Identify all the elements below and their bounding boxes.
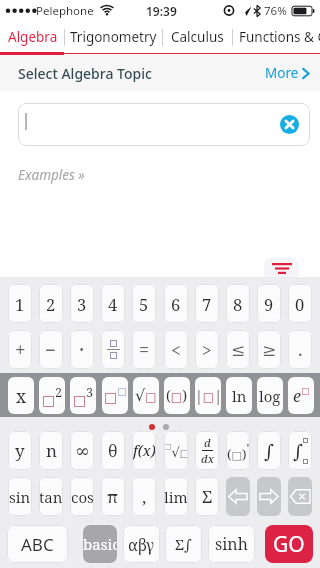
staticText: tan	[39, 487, 63, 507]
button[interactable]: lim	[164, 477, 188, 516]
staticText: dx	[201, 451, 214, 466]
staticText: 7	[202, 293, 212, 315]
button[interactable]: (□)'	[226, 431, 250, 470]
staticText: □3	[73, 384, 93, 408]
staticText: >	[202, 338, 212, 362]
button[interactable]: Functions & G	[232, 22, 320, 52]
button[interactable]: θ	[101, 431, 125, 470]
staticText: GO	[273, 530, 305, 559]
button[interactable]	[280, 115, 299, 134]
button[interactable]: 9	[257, 284, 281, 323]
staticText: 8	[233, 293, 243, 315]
staticText: ln	[232, 386, 247, 406]
button[interactable]: ≥	[257, 330, 281, 369]
staticText: □2	[42, 384, 62, 408]
button[interactable]: 6	[164, 284, 188, 323]
button[interactable]	[288, 477, 312, 516]
button[interactable]: tan	[39, 477, 63, 516]
staticText: 1	[15, 293, 25, 315]
button[interactable]: sin	[8, 477, 32, 516]
button[interactable]: ·	[70, 330, 94, 369]
button[interactable]: d	[195, 431, 219, 470]
staticText: 4	[108, 293, 118, 315]
button[interactable]: ∫	[288, 431, 312, 470]
staticText: e□	[293, 385, 310, 407]
staticText: x	[16, 384, 27, 408]
button[interactable]: Σ	[195, 477, 219, 516]
staticText: sin	[9, 487, 31, 507]
button[interactable]: basic	[83, 525, 117, 563]
staticText: lim	[164, 487, 188, 507]
button[interactable]: 0	[288, 284, 312, 323]
button[interactable]: f(x)	[132, 431, 156, 470]
button[interactable]: Algebra	[1, 22, 64, 52]
button[interactable]: αβγ	[123, 525, 160, 563]
staticText: (□)'	[227, 439, 250, 463]
button[interactable]: n	[39, 431, 63, 470]
staticText: 76%	[264, 3, 287, 19]
button[interactable]: +	[8, 330, 32, 369]
button[interactable]: ABC	[7, 525, 68, 563]
button[interactable]: Calculus	[162, 22, 232, 52]
button[interactable]: □√□	[164, 431, 188, 470]
button[interactable]: ,	[132, 477, 156, 516]
button[interactable]: |□|	[195, 377, 221, 414]
button[interactable]: More	[265, 55, 320, 91]
button[interactable]: e□	[288, 377, 314, 414]
button[interactable]: π	[101, 477, 125, 516]
button[interactable]: Examples »	[18, 166, 85, 184]
button[interactable]: −	[39, 330, 63, 369]
button[interactable]	[18, 103, 310, 146]
button[interactable]: √□	[133, 377, 159, 414]
staticText: 0	[295, 293, 305, 315]
button[interactable]	[226, 477, 250, 516]
button[interactable]: log	[257, 377, 283, 414]
button[interactable]: x	[8, 377, 34, 414]
button[interactable]: .	[288, 330, 312, 369]
button[interactable]: 8	[226, 284, 250, 323]
button[interactable]: ∫	[257, 431, 281, 470]
button[interactable]: =	[132, 330, 156, 369]
button[interactable]: Trigonometry	[64, 22, 162, 52]
staticText: αβγ	[128, 534, 155, 555]
staticText: Pelephone	[36, 3, 94, 19]
button[interactable]: 1	[8, 284, 32, 323]
button[interactable]: □3	[70, 377, 96, 414]
button[interactable]	[257, 477, 281, 516]
button[interactable]: <	[164, 330, 188, 369]
button[interactable]: ln	[226, 377, 252, 414]
staticText: =	[139, 337, 150, 362]
button[interactable]	[264, 258, 299, 282]
button[interactable]: ∞	[70, 431, 94, 470]
button[interactable]: 5	[132, 284, 156, 323]
staticText: log	[259, 386, 281, 406]
button[interactable]: □□	[102, 377, 128, 414]
button[interactable]: 4	[101, 284, 125, 323]
staticText: θ	[108, 440, 118, 462]
staticText: 3	[77, 293, 87, 315]
button[interactable]: >	[195, 330, 219, 369]
button[interactable]: □2	[39, 377, 65, 414]
staticText: Σ	[202, 485, 213, 508]
button[interactable]: Σ∫	[165, 525, 202, 563]
staticText: cos	[71, 487, 94, 507]
staticText: (□)	[166, 386, 188, 405]
staticText: n	[46, 439, 57, 462]
staticText: √□	[135, 386, 157, 405]
button[interactable]: y	[8, 431, 32, 470]
button[interactable]: sinh	[208, 525, 255, 563]
staticText: 6	[171, 293, 181, 315]
button[interactable]: ≤	[226, 330, 250, 369]
staticText: y	[15, 439, 25, 462]
staticText: d	[204, 435, 211, 450]
button[interactable]: GO	[265, 525, 313, 563]
button[interactable]: 3	[70, 284, 94, 323]
button[interactable]: 2	[39, 284, 63, 323]
staticText: 5	[139, 293, 149, 315]
staticText: ·	[79, 335, 85, 364]
button[interactable]: cos	[70, 477, 94, 516]
button[interactable]: (□)	[164, 377, 190, 414]
staticText: 2	[46, 293, 56, 315]
button[interactable]	[101, 330, 125, 369]
button[interactable]: 7	[195, 284, 219, 323]
